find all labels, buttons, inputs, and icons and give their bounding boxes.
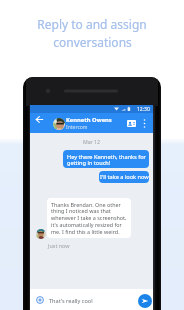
staticText: That's really cool [49,297,93,305]
button[interactable]: Send [138,294,152,308]
staticText: conversations [53,34,132,50]
staticText: Kenneth Owens [66,116,112,124]
staticText: 12:30 [137,106,150,113]
button[interactable]: Add attachment [34,294,46,306]
button[interactable]: Back [33,113,46,126]
staticText: Thanks Brendan. One other thing I notice… [51,201,127,236]
staticText: Hey there Kenneth, thanks for getting in… [67,153,146,167]
staticText: Mar 12 [30,138,153,145]
staticText: Just now [48,242,70,249]
staticText: Reply to and assign [37,16,147,32]
staticText: Intercom [66,124,88,131]
button[interactable]: More options [138,116,151,130]
button[interactable]: Contact details [124,116,138,130]
staticText: I'll take a look now [100,173,149,181]
